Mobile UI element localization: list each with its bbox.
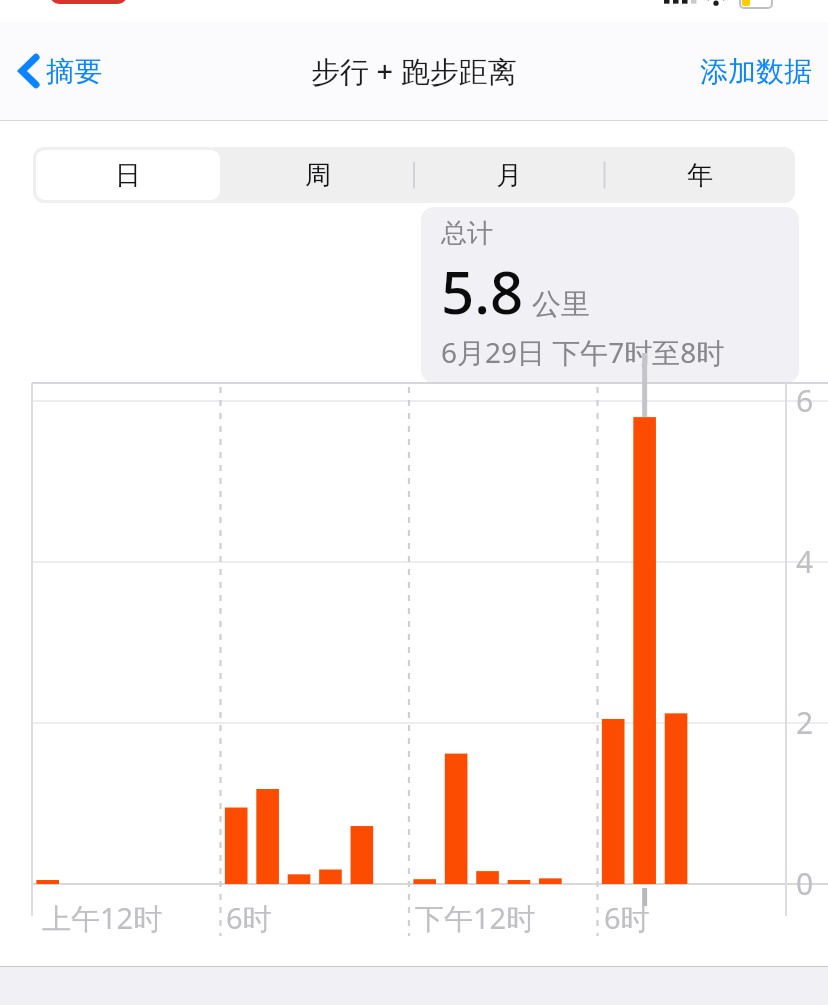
staticText: 6时 [226, 898, 272, 938]
staticText: 6月29日 下午7时至8时 [441, 333, 725, 371]
staticText: 日 [115, 159, 141, 192]
button[interactable]: 添加数据 [700, 54, 812, 89]
staticText: 年 [687, 159, 713, 192]
staticText: 5.8 [441, 252, 524, 331]
button[interactable]: 总计 [421, 207, 799, 383]
button[interactable]: 月 [416, 150, 601, 200]
staticText: 周 [305, 159, 331, 192]
button[interactable]: 摘要 [18, 52, 102, 90]
staticText: 4 [796, 541, 814, 582]
staticText: 月 [496, 159, 522, 192]
staticText: 摘要 [46, 54, 102, 89]
button[interactable]: 年 [607, 150, 792, 200]
staticText: 2 [796, 702, 814, 743]
staticText: 下午12时 [415, 898, 536, 938]
staticText: 上午12时 [42, 898, 163, 938]
staticText: 总计 [441, 217, 493, 250]
button[interactable]: 周 [226, 150, 410, 200]
staticText: 公里 [532, 286, 590, 323]
button[interactable]: 日 [36, 150, 220, 200]
staticText: 0 [796, 863, 814, 904]
staticText: 6 [796, 380, 814, 421]
staticText: 添加数据 [700, 54, 812, 89]
staticText: 6时 [604, 898, 650, 938]
staticText: 步行 + 跑步距离 [311, 51, 517, 91]
